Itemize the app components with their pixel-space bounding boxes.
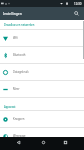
staticText: Meer xyxy=(13,87,20,91)
button[interactable]: Datagebruik xyxy=(0,64,84,80)
button[interactable]: Home xyxy=(39,137,47,150)
button[interactable]: Wifi xyxy=(0,30,84,46)
staticText: Weergave xyxy=(13,134,26,137)
button[interactable]: Bluetooth xyxy=(0,47,84,63)
staticText: Datagebruik xyxy=(13,70,29,74)
button[interactable]: Terug xyxy=(7,137,30,150)
staticText: Apparaat xyxy=(4,105,16,109)
staticText: Draadloos en netwerken xyxy=(4,23,35,27)
button[interactable]: Recent xyxy=(61,137,69,150)
staticText: Instellingen xyxy=(3,11,22,16)
button[interactable]: Zoeken xyxy=(70,7,82,20)
staticText: Bluetooth xyxy=(13,53,26,57)
button[interactable]: Meer xyxy=(0,81,84,97)
button[interactable]: Weergave xyxy=(0,128,84,137)
staticText: 12:30 xyxy=(74,2,82,6)
button[interactable]: Knoppen xyxy=(0,111,84,127)
staticText: Wifi xyxy=(13,36,18,40)
staticText: Knoppen xyxy=(13,117,25,121)
